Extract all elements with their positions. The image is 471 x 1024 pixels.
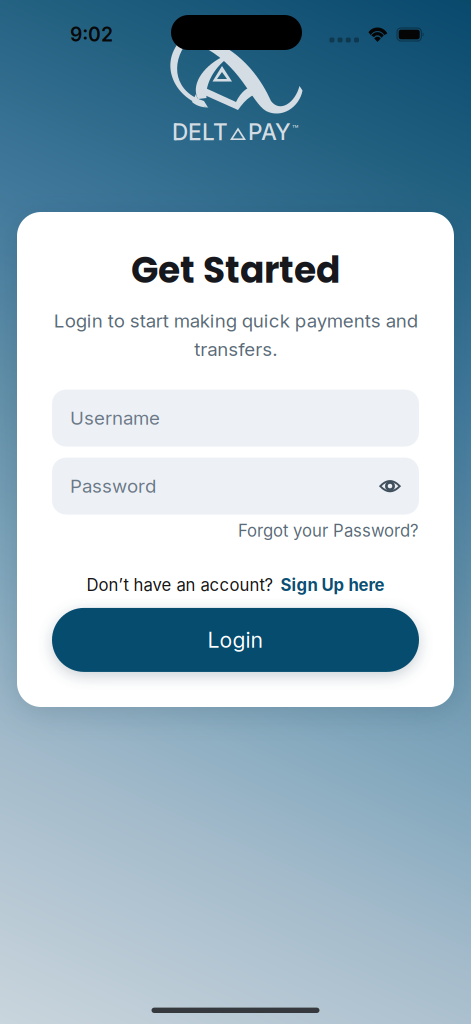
- staticText: Login: [207, 627, 263, 653]
- button[interactable]: Sign Up here: [280, 575, 384, 595]
- staticText: DELT: [172, 118, 228, 146]
- staticText: Password: [70, 475, 156, 497]
- staticText: Don’t have an account?: [86, 575, 273, 595]
- staticText: ™: [292, 122, 299, 135]
- staticText: Username: [70, 407, 160, 429]
- staticText: 9:02: [70, 23, 113, 46]
- staticText: Sign Up here: [280, 575, 384, 595]
- button[interactable]: Show password: [362, 467, 402, 506]
- staticText: Forgot your Password?: [238, 521, 419, 541]
- staticText: PAY: [248, 118, 291, 146]
- button[interactable]: Login: [52, 608, 419, 672]
- button[interactable]: Forgot your Password?: [238, 515, 419, 541]
- staticText: Get Started: [131, 245, 340, 295]
- staticText: Login to start making quick payments and…: [53, 309, 417, 361]
